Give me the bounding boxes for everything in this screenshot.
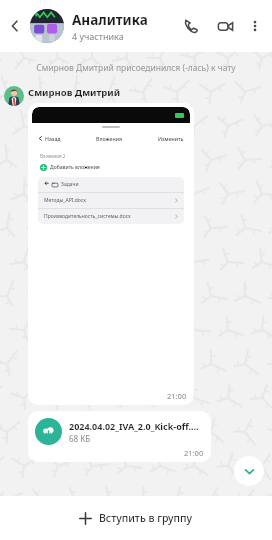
staticText: Смирнов Дмитрий присоединился (-лась) к … — [16, 62, 256, 74]
staticText: Вложения — [96, 135, 123, 142]
button[interactable]: Производительность_системы.docx — [44, 209, 179, 224]
staticText: Производительность_системы.docx — [44, 213, 174, 220]
button[interactable]: Back — [0, 0, 30, 52]
button[interactable]: Добавить вложения — [40, 164, 190, 171]
button[interactable]: Call — [176, 11, 206, 41]
staticText: Методы_API.docx — [44, 197, 174, 204]
staticText: Аналитика — [72, 11, 148, 29]
staticText: Смирнов Дмитрий — [28, 86, 121, 99]
staticText: Вступить в группу — [99, 511, 193, 525]
button[interactable]: More options — [242, 6, 268, 46]
button[interactable]: Назад — [28, 103, 194, 405]
button[interactable]: Вступить в группу — [0, 496, 272, 540]
button[interactable]: Задачи — [44, 177, 184, 192]
staticText: 68 КБ — [69, 433, 91, 444]
staticText: Назад — [45, 135, 61, 142]
button[interactable]: Методы_API.docx — [44, 193, 179, 208]
button[interactable]: Video call — [210, 11, 240, 41]
staticText: Изменить — [158, 135, 184, 142]
staticText: 2024.04.02_IVA_2.0_Kick-off.pdf — [69, 420, 204, 432]
staticText: Добавить вложения — [50, 164, 100, 171]
staticText: 4 участника — [72, 30, 124, 42]
staticText: 21:00 — [184, 448, 204, 458]
button[interactable]: Scroll to bottom — [234, 456, 264, 486]
staticText: Вложения 2 — [40, 153, 66, 159]
staticText: Задачи — [61, 181, 79, 188]
staticText: 21:00 — [167, 391, 187, 401]
button[interactable]: 2024.04.02_IVA_2.0_Kick-off.pdf — [28, 411, 211, 462]
